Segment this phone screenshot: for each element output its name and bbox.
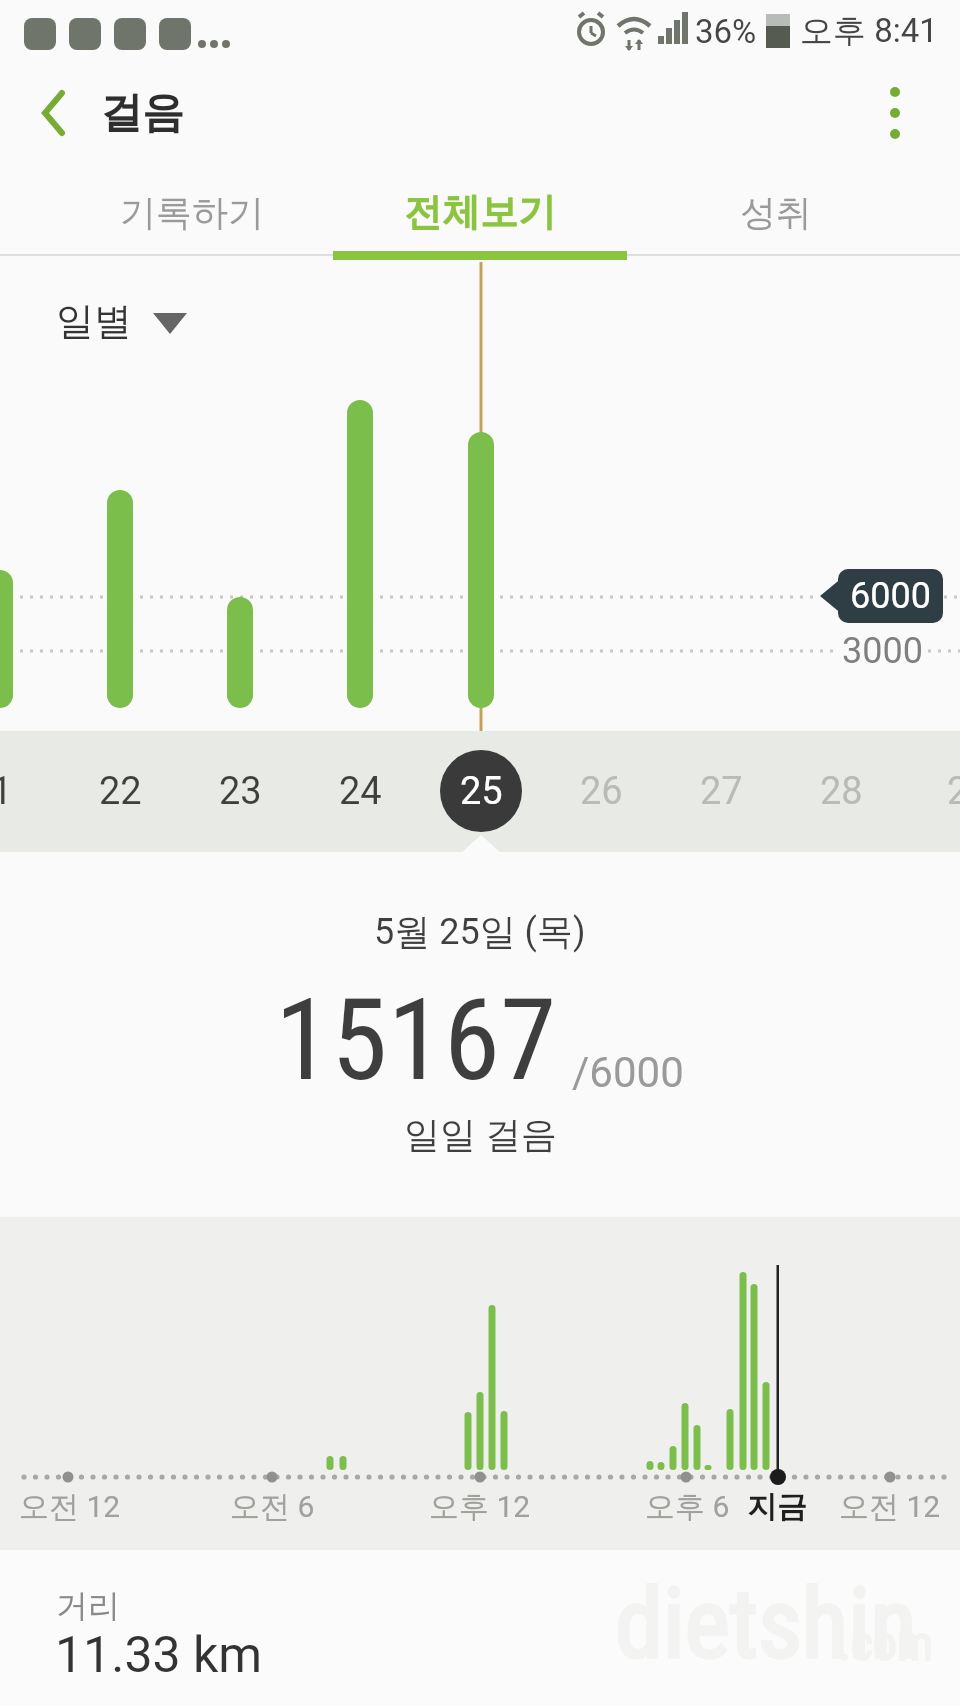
staticText: 22 — [99, 769, 142, 814]
button[interactable] — [28, 85, 88, 145]
button[interactable] — [870, 80, 922, 146]
staticText: 2 — [947, 769, 960, 814]
staticText: 오후 8:41 — [800, 10, 938, 52]
staticText: dietshin — [615, 1568, 917, 1681]
button[interactable]: 기록하기 — [67, 177, 317, 247]
button[interactable]: 전체보기 — [355, 177, 605, 247]
button[interactable]: 일별 — [14, 291, 174, 351]
staticText: 27 — [700, 769, 743, 814]
staticText: 3000 — [842, 630, 923, 672]
staticText: 11.33 km — [55, 1626, 263, 1685]
staticText: 오후 6 — [645, 1488, 730, 1526]
button[interactable]: 성취 — [676, 177, 876, 247]
staticText: 24 — [339, 769, 382, 814]
staticText: 걸음 — [100, 87, 184, 140]
staticText: 기록하기 — [120, 190, 264, 235]
button[interactable]: 24 — [315, 761, 405, 821]
staticText: 28 — [820, 769, 863, 814]
button[interactable]: 26 — [556, 761, 646, 821]
staticText: 오전 12 — [839, 1488, 941, 1526]
staticText: 5월 25일 (목) — [374, 909, 586, 954]
staticText: 거리 — [56, 1586, 120, 1626]
staticText: 1 — [0, 769, 13, 814]
staticText: 성취 — [740, 190, 812, 235]
staticText: 26 — [580, 769, 623, 814]
staticText: 15167 — [275, 973, 557, 1107]
staticText: 일일 걸음 — [404, 1112, 557, 1157]
button[interactable]: 28 — [796, 761, 886, 821]
staticText: 6000 — [850, 575, 931, 617]
staticText: 일별 — [56, 297, 132, 345]
staticText: 23 — [219, 769, 262, 814]
staticText: .com — [838, 1615, 934, 1671]
staticText: 지금 — [747, 1488, 807, 1526]
button[interactable]: 22 — [75, 761, 165, 821]
staticText: /6000 — [572, 1048, 684, 1097]
staticText: 오전 12 — [19, 1488, 121, 1526]
button[interactable]: 27 — [676, 761, 766, 821]
staticText: 오전 6 — [230, 1488, 315, 1526]
staticText: 전체보기 — [404, 188, 556, 236]
staticText: 오후 12 — [429, 1488, 531, 1526]
button[interactable]: 25 — [436, 761, 526, 821]
staticText: 25 — [460, 769, 503, 814]
staticText: 36% — [695, 12, 757, 51]
button[interactable]: 23 — [195, 761, 285, 821]
